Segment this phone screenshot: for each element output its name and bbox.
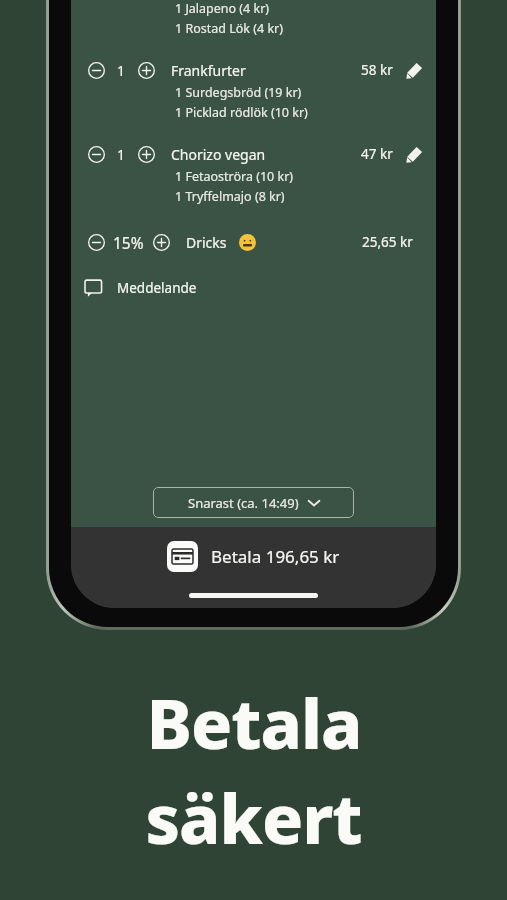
staticText: Betala 196,65 kr bbox=[211, 545, 340, 568]
staticText: Frankfurter bbox=[171, 61, 361, 80]
staticText: 15% bbox=[113, 232, 144, 253]
staticText: Betala bbox=[146, 676, 362, 769]
button[interactable]: Öka bbox=[135, 59, 157, 81]
staticText: 1 bbox=[117, 61, 126, 80]
button[interactable]: Snarast (ca. 14:49) bbox=[153, 487, 354, 518]
staticText: Snarast (ca. 14:49) bbox=[188, 494, 299, 512]
staticText: 1 Tryffelmajo (8 kr) bbox=[175, 188, 285, 205]
staticText: 1 Fetaoströra (10 kr) bbox=[175, 168, 294, 185]
button[interactable]: Minska bbox=[85, 231, 107, 253]
button[interactable]: Redigera bbox=[404, 144, 424, 164]
staticText: 1 Picklad rödlök (10 kr) bbox=[175, 104, 308, 121]
staticText: 58 kr bbox=[361, 61, 393, 79]
button[interactable]: Minska bbox=[85, 59, 107, 81]
staticText: 1 Surdegsbröd (19 kr) bbox=[175, 84, 302, 101]
staticText: 1 Jalapeno (4 kr) bbox=[175, 0, 270, 17]
staticText: Dricks bbox=[186, 233, 227, 252]
button[interactable]: Öka bbox=[135, 143, 157, 165]
other: Betalkort bbox=[167, 541, 198, 572]
button[interactable]: Öka bbox=[150, 231, 172, 253]
staticText: 1 Rostad Lök (4 kr) bbox=[175, 20, 283, 37]
staticText: Meddelande bbox=[117, 279, 197, 297]
staticText: 47 kr bbox=[361, 145, 393, 163]
staticText: 25,65 kr bbox=[362, 233, 413, 251]
staticText: 1 bbox=[117, 145, 126, 164]
button[interactable]: Redigera bbox=[404, 60, 424, 80]
other: Meddelande bbox=[85, 279, 103, 297]
button[interactable]: Betalkort bbox=[167, 541, 340, 572]
staticText: Chorizo vegan bbox=[171, 145, 361, 164]
button[interactable]: Meddelande bbox=[85, 279, 436, 297]
button[interactable]: Minska bbox=[85, 143, 107, 165]
staticText: säkert bbox=[145, 771, 362, 864]
